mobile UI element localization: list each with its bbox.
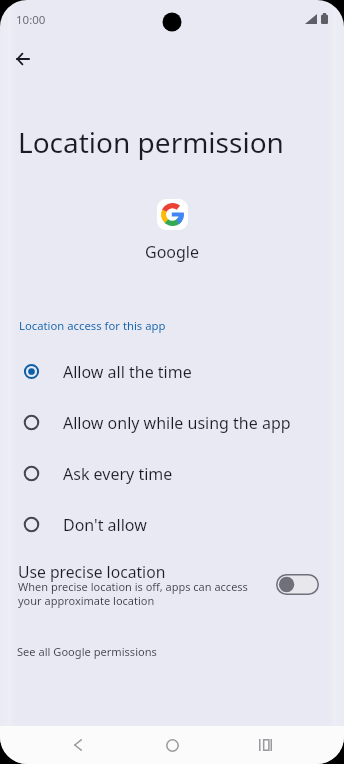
- button[interactable]: Allow all the time: [0, 346, 344, 397]
- staticText: Ask every time: [63, 463, 173, 485]
- staticText: Location permission: [18, 123, 284, 161]
- staticText: When precise location is off, apps can a…: [18, 579, 248, 608]
- button[interactable]: See all Google permissions: [0, 640, 157, 663]
- staticText: Allow only while using the app: [63, 412, 291, 434]
- button[interactable]: Ask every time: [0, 448, 344, 499]
- button[interactable]: Back: [61, 728, 95, 762]
- button[interactable]: Use precise location toggle: [276, 574, 319, 595]
- button[interactable]: Home: [155, 728, 189, 762]
- button[interactable]: Recent apps: [248, 728, 282, 762]
- button[interactable]: Don't allow: [0, 499, 344, 550]
- button[interactable]: Allow only while using the app: [0, 397, 344, 448]
- button[interactable]: Back: [8, 44, 37, 73]
- staticText: Google: [145, 241, 200, 263]
- staticText: Allow all the time: [63, 361, 192, 383]
- button[interactable]: Use precise location: [0, 556, 344, 614]
- staticText: Use precise location: [18, 561, 166, 582]
- staticText: Don't allow: [63, 514, 147, 536]
- staticText: Location access for this app: [19, 318, 166, 333]
- staticText: 10:00: [16, 12, 46, 28]
